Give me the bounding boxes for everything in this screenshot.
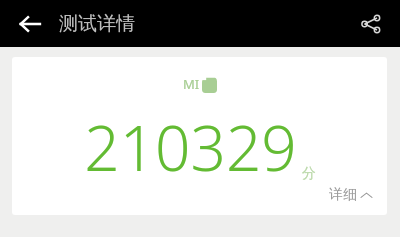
- staticText: 分: [302, 165, 316, 183]
- staticText: 210329: [84, 105, 297, 189]
- button[interactable]: MI: [12, 57, 387, 215]
- staticText: 详细: [329, 186, 357, 204]
- button[interactable]: 详细: [325, 183, 377, 207]
- button[interactable]: Share: [354, 7, 388, 41]
- button[interactable]: Back: [12, 6, 48, 42]
- staticText: 测试详情: [59, 12, 135, 36]
- staticText: MI: [183, 75, 200, 93]
